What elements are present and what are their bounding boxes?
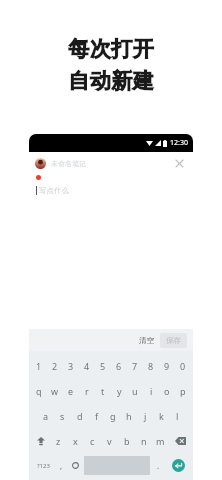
button[interactable]: 6: [111, 354, 127, 378]
button[interactable]: 3: [63, 354, 79, 378]
button[interactable]: ,: [55, 453, 68, 478]
button[interactable]: e: [63, 378, 79, 403]
staticText: i: [150, 385, 153, 397]
button[interactable]: p: [175, 378, 191, 403]
button[interactable]: v: [101, 428, 118, 453]
staticText: 12:30: [170, 138, 188, 148]
staticText: g: [110, 410, 116, 422]
button[interactable]: f: [88, 403, 105, 428]
button[interactable]: x: [67, 428, 84, 453]
staticText: j: [144, 410, 147, 422]
button[interactable]: c: [84, 428, 101, 453]
button[interactable]: n: [135, 428, 152, 453]
staticText: 5: [100, 360, 106, 372]
button[interactable]: 7: [127, 354, 143, 378]
button[interactable]: 2: [47, 354, 63, 378]
button[interactable]: y: [111, 378, 127, 403]
staticText: 清空: [139, 336, 154, 345]
button[interactable]: 1: [31, 354, 47, 378]
staticText: t: [101, 385, 105, 397]
staticText: h: [126, 410, 132, 422]
staticText: 1: [36, 360, 42, 372]
button[interactable]: Language: [68, 453, 83, 478]
staticText: 未命名笔记: [51, 159, 86, 168]
staticText: n: [141, 435, 147, 447]
button[interactable]: h: [121, 403, 137, 428]
button[interactable]: b: [118, 428, 135, 453]
button[interactable]: r: [79, 378, 95, 403]
button[interactable]: 保存: [160, 333, 187, 348]
staticText: b: [124, 435, 130, 447]
button[interactable]: w: [47, 378, 63, 403]
button[interactable]: Close: [171, 155, 187, 171]
staticText: q: [36, 385, 42, 397]
staticText: .: [157, 460, 160, 471]
staticText: 4: [84, 360, 90, 372]
button[interactable]: 9: [159, 354, 175, 378]
button[interactable]: i: [143, 378, 159, 403]
staticText: 0: [180, 360, 186, 372]
staticText: r: [85, 385, 89, 397]
staticText: d: [77, 410, 83, 422]
staticText: c: [90, 435, 95, 447]
staticText: w: [51, 385, 59, 397]
staticText: s: [60, 410, 65, 422]
button[interactable]: 0: [175, 354, 191, 378]
staticText: e: [68, 385, 74, 397]
button[interactable]: 清空: [133, 333, 160, 348]
staticText: m: [156, 435, 165, 447]
staticText: 9: [164, 360, 170, 372]
staticText: y: [117, 385, 122, 397]
staticText: l: [176, 410, 179, 422]
button[interactable]: z: [50, 428, 67, 453]
button[interactable]: 写点什么: [29, 174, 193, 329]
staticText: 7: [132, 360, 138, 372]
staticText: 6: [116, 360, 122, 372]
button[interactable]: u: [127, 378, 143, 403]
staticText: u: [132, 385, 138, 397]
staticText: 3: [68, 360, 74, 372]
button[interactable]: s: [54, 403, 71, 428]
staticText: k: [159, 410, 164, 422]
button[interactable]: d: [71, 403, 88, 428]
button[interactable]: Enter: [172, 459, 185, 472]
button[interactable]: m: [152, 428, 169, 453]
button[interactable]: a: [37, 403, 54, 428]
staticText: 保存: [166, 336, 181, 345]
staticText: p: [180, 385, 186, 397]
staticText: v: [107, 435, 112, 447]
button[interactable]: l: [169, 403, 185, 428]
button[interactable]: k: [153, 403, 169, 428]
staticText: 自动新建: [68, 68, 154, 94]
staticText: o: [164, 385, 170, 397]
staticText: 2: [52, 360, 58, 372]
button[interactable]: .: [151, 453, 166, 478]
button[interactable]: j: [137, 403, 153, 428]
staticText: x: [73, 435, 78, 447]
staticText: 写点什么: [39, 186, 69, 195]
button[interactable]: 4: [79, 354, 95, 378]
button[interactable]: ?123: [32, 453, 55, 478]
button[interactable]: q: [31, 378, 47, 403]
button[interactable]: g: [105, 403, 121, 428]
staticText: a: [43, 410, 49, 422]
button[interactable]: Account: [35, 158, 46, 169]
button[interactable]: t: [95, 378, 111, 403]
button[interactable]: 5: [95, 354, 111, 378]
staticText: ,: [60, 460, 63, 471]
staticText: 8: [148, 360, 154, 372]
staticText: 每次打开: [68, 36, 154, 62]
button[interactable]: Shift: [31, 428, 50, 453]
staticText: z: [56, 435, 61, 447]
button[interactable]: Backspace: [169, 428, 191, 453]
button[interactable]: o: [159, 378, 175, 403]
staticText: f: [95, 410, 99, 422]
button[interactable]: 8: [143, 354, 159, 378]
staticText: ?123: [37, 462, 50, 470]
